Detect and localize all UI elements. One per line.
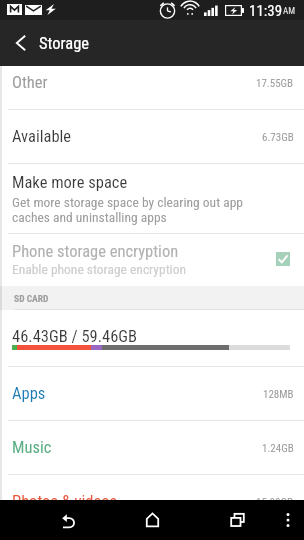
staticText: 17.55GB xyxy=(256,77,294,90)
button[interactable]: Music xyxy=(0,421,304,474)
button[interactable]: Other xyxy=(0,66,304,109)
staticText: 11:39 xyxy=(249,2,283,20)
staticText: 1.24GB xyxy=(262,442,294,455)
staticText: Storage xyxy=(39,34,90,53)
staticText: 46.43GB / 59.46GB xyxy=(12,327,138,346)
button[interactable]: Home xyxy=(128,500,176,540)
staticText: Get more storage space by clearing out a… xyxy=(12,194,244,225)
staticText: AM xyxy=(283,6,295,17)
staticText: Make more space xyxy=(12,173,128,192)
staticText: Phone storage encryption xyxy=(12,242,179,261)
staticText: 15.99GB xyxy=(256,496,294,500)
button[interactable]: Available xyxy=(0,110,304,163)
staticText: Available xyxy=(12,127,72,146)
button[interactable]: Recent apps xyxy=(213,500,261,540)
staticText: Other xyxy=(12,73,48,92)
button[interactable]: More options xyxy=(272,500,304,540)
staticText: SD CARD xyxy=(14,293,49,304)
button[interactable]: Back xyxy=(44,500,92,540)
staticText: Apps xyxy=(12,384,46,403)
button[interactable]: Phone storage encryption xyxy=(0,234,304,286)
button[interactable]: Back xyxy=(0,20,39,66)
staticText: Music xyxy=(12,438,52,457)
staticText: Enable phone storage encryption xyxy=(12,261,187,277)
button[interactable]: Photos & videos xyxy=(0,475,304,500)
staticText: 6.73GB xyxy=(262,131,294,144)
staticText: 128MB xyxy=(263,388,294,401)
staticText: Photos & videos xyxy=(12,492,118,500)
button[interactable]: Make more space xyxy=(0,164,304,233)
button[interactable]: Apps xyxy=(0,367,304,420)
